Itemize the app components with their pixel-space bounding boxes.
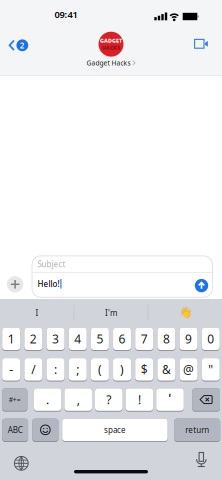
button[interactable]: 1 [2,327,20,351]
button[interactable]: #+= [2,388,27,412]
staticText: Gadget Hacks [87,58,131,67]
button[interactable]: FaceTime [194,38,208,49]
staticText: GADGET [100,37,122,44]
staticText: . [46,392,49,407]
staticText: 4 [74,331,81,347]
button[interactable]: ) [113,358,131,381]
staticText: Subject [37,259,65,269]
button[interactable]: 3 [46,327,64,351]
button[interactable]: $ [135,358,153,381]
button[interactable]: - [2,358,20,381]
button[interactable]: Gadget Hacks conversation details [81,31,141,67]
staticText: @ [183,361,194,377]
button[interactable]: 9 [180,327,198,351]
button[interactable]: space [62,419,168,442]
button[interactable]: , [64,388,92,412]
staticText: Hello! [37,278,59,289]
staticText: : [54,361,57,377]
staticText: , [77,392,80,407]
button[interactable]: 5 [91,327,109,351]
staticText: return [185,424,209,435]
staticText: 0 [207,331,214,347]
button[interactable]: / [24,358,42,381]
button[interactable]: Back [7,38,29,52]
button[interactable]: ABC [2,419,28,442]
staticText: 09:41 [54,8,77,21]
button[interactable]: Add attachment [7,276,23,292]
button[interactable]: ? [95,388,123,412]
button[interactable]: @ [180,358,198,381]
button[interactable]: I [0,299,74,327]
staticText: ? [106,392,111,407]
button[interactable]: ! [126,388,153,412]
button[interactable]: Waving hand emoji [148,299,222,327]
staticText: 3 [52,331,59,347]
staticText: ABC [8,424,23,435]
button[interactable]: ; [69,358,87,381]
button[interactable]: : [46,358,64,381]
staticText: $ [141,361,148,377]
staticText: - [9,361,13,377]
button[interactable]: Dictation [196,452,207,467]
button[interactable]: & [157,358,175,381]
button[interactable]: ( [91,358,109,381]
staticText: ( [98,361,102,377]
button[interactable]: 6 [113,327,131,351]
button[interactable]: Switch keyboard [14,456,29,471]
button[interactable]: Emoji [32,419,58,442]
button[interactable]: ' [156,388,184,412]
button[interactable]: Delete [192,388,220,412]
staticText: I'm [105,307,117,318]
staticText: " [208,361,213,377]
staticText: / [31,361,35,377]
staticText: ! [138,392,141,407]
staticText: 2 [20,40,25,51]
staticText: 5 [96,331,103,347]
staticText: space [104,424,126,435]
staticText: 6 [119,331,126,347]
button[interactable]: 4 [69,327,87,351]
staticText: 1 [8,331,15,347]
staticText: 7 [141,331,148,347]
staticText: & [162,361,171,377]
button[interactable]: 2 [24,327,42,351]
staticText: 8 [163,331,170,347]
button[interactable]: Send [195,279,208,292]
button[interactable]: return [174,419,220,442]
staticText: HACKS [102,44,120,51]
staticText: 2 [30,331,37,347]
button[interactable]: " [202,358,220,381]
staticText: #+= [9,395,21,404]
button[interactable]: I'm [74,299,148,327]
button[interactable]: 8 [157,327,175,351]
staticText: 👋 [178,307,191,319]
button[interactable]: . [34,388,61,412]
staticText: ) [120,361,124,377]
button[interactable]: 0 [202,327,220,351]
staticText: I [35,307,38,318]
staticText: ; [76,361,79,377]
staticText: 9 [185,331,192,347]
button[interactable]: 7 [135,327,153,351]
